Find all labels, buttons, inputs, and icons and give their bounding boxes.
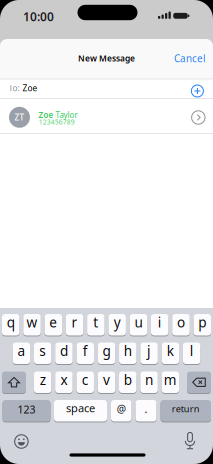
- staticText: .: [144, 401, 147, 416]
- staticText: a: [17, 341, 25, 360]
- button[interactable]: .: [135, 399, 156, 422]
- staticText: Zoe Taylor: [38, 109, 77, 120]
- button[interactable]: l: [183, 341, 200, 365]
- staticText: k: [167, 341, 174, 360]
- staticText: 123456789: [39, 117, 75, 126]
- staticText: v: [103, 370, 110, 389]
- staticText: n: [145, 370, 153, 389]
- staticText: s: [39, 341, 46, 360]
- button[interactable]: Delete: [187, 370, 211, 394]
- staticText: z: [40, 370, 46, 389]
- button[interactable]: a: [13, 341, 30, 365]
- staticText: 123: [17, 402, 35, 416]
- button[interactable]: Zoe Taylor 123456789: [0, 99, 182, 133]
- staticText: To:: [8, 82, 19, 94]
- button[interactable]: p: [193, 313, 211, 336]
- button[interactable]: u: [130, 313, 147, 336]
- staticText: y: [114, 313, 121, 331]
- staticText: 10:00: [23, 8, 54, 24]
- button[interactable]: Dictate: [181, 430, 199, 450]
- staticText: f: [83, 341, 88, 360]
- button[interactable]: f: [76, 341, 94, 365]
- button[interactable]: Add contact: [189, 83, 205, 99]
- button[interactable]: Emoji: [12, 432, 30, 450]
- button[interactable]: k: [162, 341, 179, 365]
- staticText: return: [172, 402, 200, 415]
- button[interactable]: c: [76, 370, 94, 394]
- button[interactable]: v: [98, 370, 115, 394]
- button[interactable]: b: [119, 370, 136, 394]
- staticText: w: [26, 313, 37, 331]
- button[interactable]: @: [111, 399, 131, 422]
- staticText: o: [177, 313, 185, 331]
- button[interactable]: d: [55, 341, 73, 365]
- staticText: j: [147, 341, 151, 360]
- button[interactable]: h: [119, 341, 137, 365]
- staticText: ZT: [14, 112, 24, 123]
- button[interactable]: Shift: [2, 370, 26, 394]
- button[interactable]: z: [34, 370, 51, 394]
- staticText: x: [60, 370, 67, 389]
- staticText: d: [60, 341, 68, 360]
- staticText: q: [7, 313, 15, 331]
- staticText: Zoe: [22, 82, 37, 94]
- button[interactable]: o: [172, 313, 190, 336]
- staticText: m: [164, 370, 177, 389]
- button[interactable]: n: [140, 370, 158, 394]
- button[interactable]: r: [66, 313, 83, 336]
- staticText: e: [49, 313, 57, 331]
- button[interactable]: m: [162, 370, 179, 394]
- button[interactable]: To field: [0, 79, 187, 98]
- staticText: l: [190, 341, 194, 360]
- staticText: i: [158, 313, 162, 331]
- staticText: New Message: [78, 52, 135, 64]
- button[interactable]: i: [151, 313, 168, 336]
- button[interactable]: Contact info: [190, 109, 206, 125]
- staticText: r: [72, 313, 78, 331]
- staticText: space: [66, 400, 95, 415]
- button[interactable]: t: [87, 313, 105, 336]
- staticText: h: [124, 341, 132, 360]
- button[interactable]: j: [140, 341, 158, 365]
- staticText: Cancel: [174, 52, 206, 65]
- staticText: b: [124, 370, 132, 389]
- button[interactable]: x: [55, 370, 73, 394]
- button[interactable]: e: [45, 313, 62, 336]
- staticText: u: [134, 313, 142, 331]
- staticText: p: [198, 313, 206, 331]
- button[interactable]: Cancel: [170, 50, 210, 66]
- button[interactable]: space: [54, 399, 107, 422]
- button[interactable]: y: [108, 313, 126, 336]
- button[interactable]: g: [98, 341, 115, 365]
- staticText: g: [102, 341, 110, 360]
- button[interactable]: s: [34, 341, 51, 365]
- staticText: @: [117, 402, 126, 416]
- button[interactable]: 123: [2, 399, 50, 422]
- button[interactable]: w: [23, 313, 41, 336]
- button[interactable]: q: [2, 313, 19, 336]
- staticText: c: [82, 370, 89, 389]
- button[interactable]: return: [160, 399, 211, 422]
- staticText: t: [93, 313, 98, 331]
